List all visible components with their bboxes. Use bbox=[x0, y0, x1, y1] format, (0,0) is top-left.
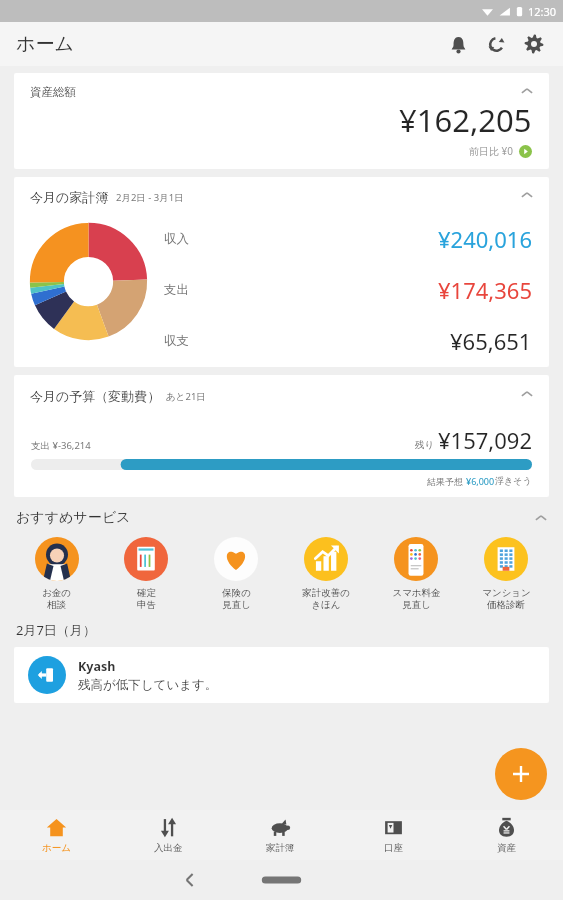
button[interactable]: ホーム bbox=[0, 810, 112, 860]
staticText: ¥240,016 bbox=[438, 224, 532, 254]
button[interactable]: 入出金 bbox=[112, 810, 224, 860]
staticText: 今月の予算（変動費） bbox=[30, 388, 161, 404]
button[interactable]: 今月の家計簿 bbox=[14, 177, 549, 367]
staticText: 支出 bbox=[164, 282, 189, 298]
button[interactable]: マンション bbox=[461, 537, 551, 611]
staticText: 2月2日 - 3月1日 bbox=[116, 191, 184, 204]
staticText: 見直し bbox=[222, 599, 251, 611]
staticText: ¥65,651 bbox=[450, 326, 532, 356]
button[interactable]: お金の bbox=[12, 537, 101, 611]
staticText: ¥6,000 bbox=[466, 475, 495, 487]
staticText: 残り bbox=[415, 439, 435, 451]
staticText: 見直し bbox=[402, 599, 431, 611]
staticText: 今月の家計簿 bbox=[30, 189, 109, 205]
staticText: 浮きそう bbox=[495, 475, 532, 486]
staticText: 資産総額 bbox=[30, 85, 76, 99]
staticText: ¥162,205 bbox=[399, 99, 532, 141]
button[interactable]: 口座 bbox=[337, 810, 450, 860]
staticText: 12:30 bbox=[528, 4, 557, 19]
button[interactable]: 家計簿 bbox=[224, 810, 337, 860]
staticText: 入出金 bbox=[154, 842, 183, 854]
staticText: 資産 bbox=[497, 842, 516, 854]
staticText: スマホ料金 bbox=[392, 587, 441, 599]
staticText: 価格診断 bbox=[487, 599, 525, 611]
staticText: あと21日 bbox=[166, 390, 206, 403]
button[interactable]: 資産 bbox=[450, 810, 563, 860]
staticText: 結果予想 bbox=[427, 475, 466, 487]
button[interactable]: 同期 bbox=[477, 25, 515, 63]
staticText: 申告 bbox=[137, 599, 156, 611]
button[interactable]: 設定 bbox=[515, 25, 553, 63]
button[interactable]: 今月の予算（変動費） bbox=[14, 375, 549, 497]
staticText: ¥174,365 bbox=[438, 275, 532, 305]
button[interactable]: スマホ料金 bbox=[371, 537, 461, 611]
staticText: 前日比 ¥0 bbox=[469, 144, 514, 158]
staticText: 収入 bbox=[164, 231, 189, 247]
staticText: 2月7日（月） bbox=[16, 621, 96, 639]
staticText: Kyash bbox=[78, 658, 116, 675]
staticText: ホーム bbox=[16, 32, 74, 56]
staticText: 家計改善の bbox=[302, 587, 350, 599]
staticText: 口座 bbox=[384, 842, 403, 854]
staticText: きほん bbox=[311, 599, 341, 611]
staticText: ¥157,092 bbox=[438, 425, 532, 455]
staticText: 保険の bbox=[222, 587, 251, 599]
staticText: 収支 bbox=[164, 333, 189, 349]
staticText: 確定 bbox=[137, 587, 156, 599]
button[interactable]: 追加 bbox=[495, 748, 547, 800]
staticText: 相談 bbox=[47, 599, 66, 611]
staticText: マンション bbox=[482, 587, 531, 599]
staticText: 支出 ¥-36,214 bbox=[31, 439, 91, 452]
button[interactable]: 保険の bbox=[191, 537, 281, 611]
staticText: おすすめサービス bbox=[16, 509, 131, 527]
staticText: お金の bbox=[42, 587, 71, 599]
button[interactable]: Kyash bbox=[14, 647, 549, 703]
button[interactable]: 通知 bbox=[439, 25, 477, 63]
staticText: 残高が低下しています。 bbox=[78, 677, 218, 693]
staticText: 家計簿 bbox=[266, 842, 295, 854]
button[interactable]: 確定 bbox=[101, 537, 191, 611]
button[interactable]: 資産総額 bbox=[14, 73, 549, 169]
staticText: ホーム bbox=[42, 842, 71, 854]
button[interactable]: 家計改善の bbox=[281, 537, 371, 611]
